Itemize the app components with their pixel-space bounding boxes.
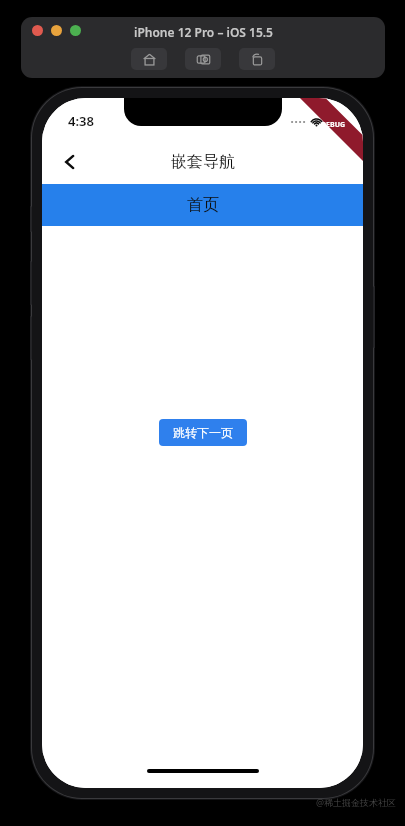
button[interactable]: 跳转下一页 [159,419,247,446]
staticText: iPhone 12 Pro – iOS 15.5 [134,24,273,40]
staticText: DEBUG [321,120,346,130]
staticText: 4:38 [68,112,94,130]
button[interactable]: Screenshot [185,48,221,70]
button[interactable]: Back [50,142,90,182]
staticText: 跳转下一页 [173,425,233,440]
staticText: 嵌套导航 [171,152,235,172]
staticText: @稀土掘金技术社区 [316,796,397,808]
button[interactable]: Rotate [239,48,275,70]
button[interactable]: 首页 [42,184,363,226]
staticText: 首页 [187,195,219,215]
button[interactable]: Home [131,48,167,70]
